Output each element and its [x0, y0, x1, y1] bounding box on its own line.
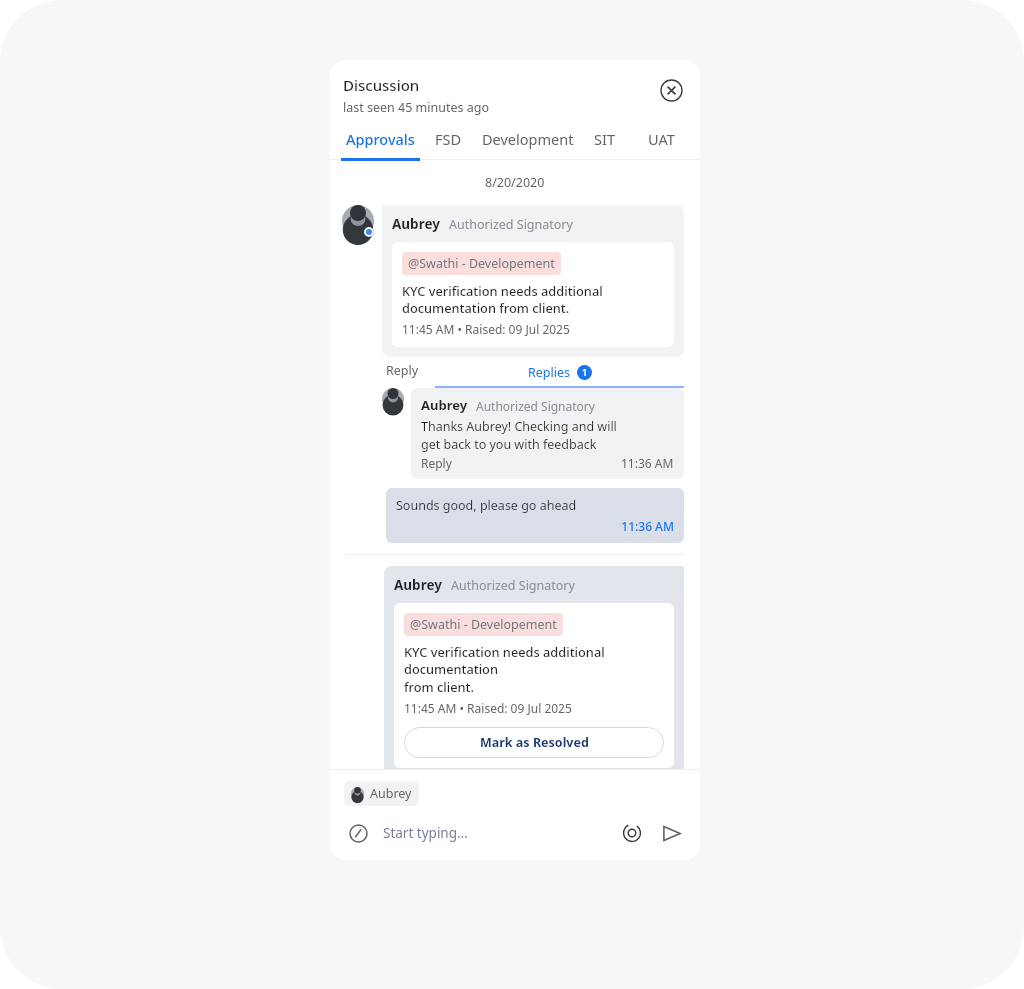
- staticText: 11:36 AM: [621, 455, 674, 471]
- button[interactable]: Attach file: [344, 819, 372, 847]
- staticText: 1: [582, 366, 588, 379]
- staticText: SIT: [594, 129, 615, 149]
- staticText: 8/20/2020: [485, 174, 545, 191]
- staticText: @Swathi - Developement: [410, 616, 557, 633]
- button[interactable]: Replies: [435, 359, 684, 388]
- staticText: Aubrey: [394, 576, 442, 594]
- staticText: Aubrey: [370, 785, 412, 802]
- staticText: Aubrey: [427, 817, 474, 835]
- staticText: FSD: [435, 129, 462, 149]
- button[interactable]: SIT: [578, 120, 631, 161]
- button[interactable]: Aubrey: [344, 781, 419, 806]
- staticText: 11:36 AM: [396, 518, 674, 534]
- button[interactable]: Reply: [421, 455, 452, 471]
- staticText: KYC verification needs additional docume…: [404, 643, 664, 695]
- staticText: KYC verification needs additional docume…: [402, 282, 603, 316]
- button[interactable]: Mention: [617, 818, 647, 848]
- staticText: Reply: [421, 455, 452, 471]
- staticText: Discussion: [343, 75, 420, 95]
- staticText: Approvals: [346, 129, 415, 149]
- button[interactable]: FSD: [420, 120, 477, 161]
- staticText: Aubrey: [392, 215, 440, 233]
- button[interactable]: Reply: [386, 357, 435, 388]
- button[interactable]: UAT: [631, 120, 691, 161]
- staticText: Aubrey: [421, 396, 468, 414]
- button[interactable]: Mark as Resolved: [404, 727, 664, 758]
- staticText: last seen 45 minutes ago: [343, 99, 490, 116]
- staticText: Development: [482, 129, 574, 149]
- staticText: Authorized Signatory: [449, 216, 573, 233]
- staticText: Authorized Signatory: [451, 577, 575, 594]
- staticText: Start typing...: [383, 824, 468, 842]
- staticText: Authorized Signatory: [476, 398, 595, 414]
- staticText: Reply: [388, 783, 421, 800]
- staticText: Replies: [528, 364, 571, 381]
- staticText: 11:45 AM • Raised: 09 Jul 2025: [402, 321, 570, 337]
- staticText: Thanks Aubrey! Checking and will get bac…: [421, 418, 617, 452]
- staticText: UAT: [648, 129, 675, 149]
- staticText: Mark as Resolved: [480, 734, 589, 751]
- staticText: Reply: [386, 362, 419, 379]
- staticText: @Swathi - Developement: [408, 255, 555, 272]
- button[interactable]: Start typing...: [383, 824, 617, 842]
- staticText: Sounds good, please go ahead: [396, 497, 577, 514]
- button[interactable]: Approvals: [341, 120, 420, 161]
- staticText: 11:45 AM • Raised: 09 Jul 2025: [404, 700, 572, 716]
- staticText: Thanks Aubrey! Checking and will get bac…: [427, 839, 623, 852]
- button[interactable]: Development: [477, 120, 578, 161]
- button[interactable]: Send: [656, 818, 686, 848]
- button[interactable]: Reply: [388, 778, 437, 809]
- button[interactable]: Close: [656, 75, 686, 105]
